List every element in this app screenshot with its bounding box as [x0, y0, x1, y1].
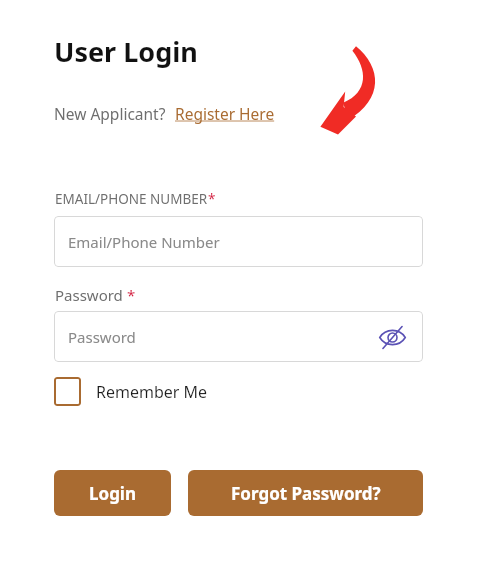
button[interactable]: Password — [54, 311, 423, 362]
button[interactable]: Show password — [375, 320, 409, 354]
other: Pointer arrow — [316, 38, 396, 136]
button[interactable]: Email/Phone Number — [54, 216, 423, 267]
staticText: Register Here — [175, 103, 275, 124]
staticText: * — [208, 190, 216, 208]
button[interactable]: Login — [54, 470, 171, 516]
staticText: Password — [55, 285, 123, 305]
staticText: Email/Phone Number — [68, 232, 220, 252]
button[interactable]: Register Here — [175, 103, 275, 124]
button[interactable]: Forgot Password? — [188, 470, 423, 516]
staticText: Remember Me — [96, 381, 208, 403]
staticText: EMAIL/PHONE NUMBER — [55, 190, 208, 208]
staticText: New Applicant? — [54, 103, 166, 124]
staticText: User Login — [54, 33, 198, 70]
button[interactable]: Remember Me — [54, 377, 208, 406]
staticText: Login — [89, 482, 137, 505]
staticText: Password — [68, 327, 136, 347]
staticText: * — [123, 285, 136, 305]
staticText: Forgot Password? — [231, 482, 381, 505]
